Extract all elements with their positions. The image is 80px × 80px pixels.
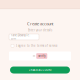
staticText: I agree to the terms of service	[16, 44, 58, 47]
staticText: Enter your details	[28, 28, 52, 32]
staticText: CREATE ACCOUNT	[28, 68, 51, 72]
staticText: name@example.com	[10, 33, 30, 40]
button[interactable]: CREATE ACCOUNT	[10, 66, 70, 73]
staticText: verify	[38, 54, 45, 58]
staticText: Create account	[27, 21, 53, 26]
